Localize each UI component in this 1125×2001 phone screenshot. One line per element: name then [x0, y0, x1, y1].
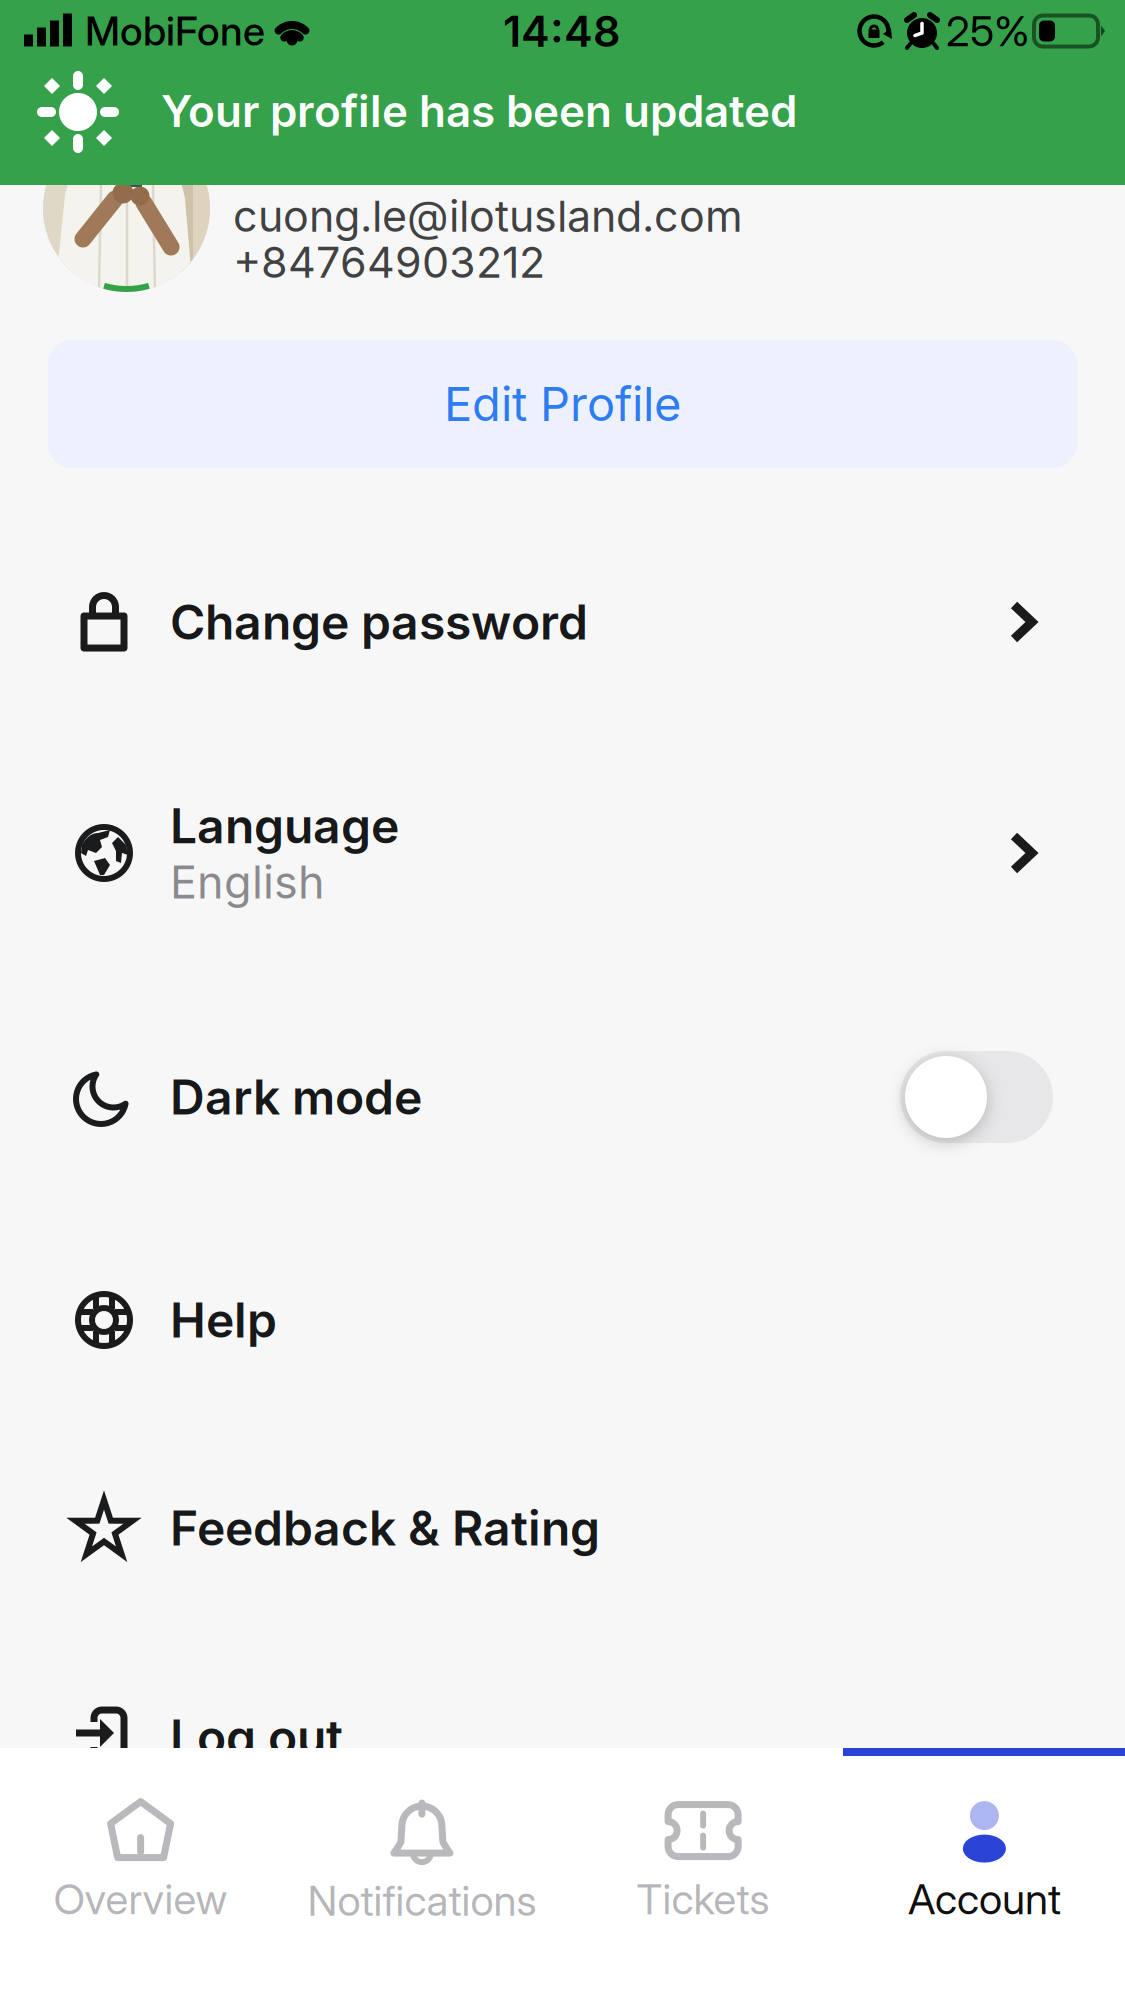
staticText: MobiFone: [85, 7, 265, 55]
staticText: Change password: [170, 593, 588, 651]
staticText: Feedback & Rating: [170, 1499, 600, 1557]
button[interactable]: Dark mode: [900, 1051, 1053, 1143]
button[interactable]: Account: [844, 1757, 1125, 1967]
staticText: Account: [908, 1874, 1061, 1924]
staticText: Notifications: [307, 1875, 536, 1926]
button[interactable]: Change password: [74, 562, 1035, 682]
staticText: 14:48: [503, 5, 621, 57]
staticText: Tickets: [637, 1874, 770, 1924]
button[interactable]: Tickets: [563, 1757, 844, 1967]
button[interactable]: Log out: [74, 1677, 1035, 1797]
staticText: Edit Profile: [444, 376, 681, 432]
button[interactable]: Notifications: [281, 1757, 562, 1967]
button[interactable]: Edit Profile: [48, 340, 1077, 468]
staticText: Log out: [170, 1708, 343, 1766]
button[interactable]: Language: [74, 788, 1035, 918]
button[interactable]: Feedback & Rating: [74, 1468, 1035, 1588]
staticText: Language: [170, 797, 399, 855]
staticText: Help: [170, 1291, 277, 1349]
staticText: Overview: [54, 1874, 228, 1924]
staticText: English: [170, 855, 325, 909]
staticText: 25%: [946, 6, 1030, 56]
staticText: cuong.le@ilotusland.com: [233, 190, 743, 242]
staticText: +84764903212: [233, 236, 545, 288]
staticText: Dark mode: [170, 1068, 422, 1126]
button[interactable]: Overview: [0, 1757, 281, 1967]
staticText: Your profile has been updated: [161, 84, 797, 138]
button[interactable]: Help: [74, 1260, 1035, 1380]
